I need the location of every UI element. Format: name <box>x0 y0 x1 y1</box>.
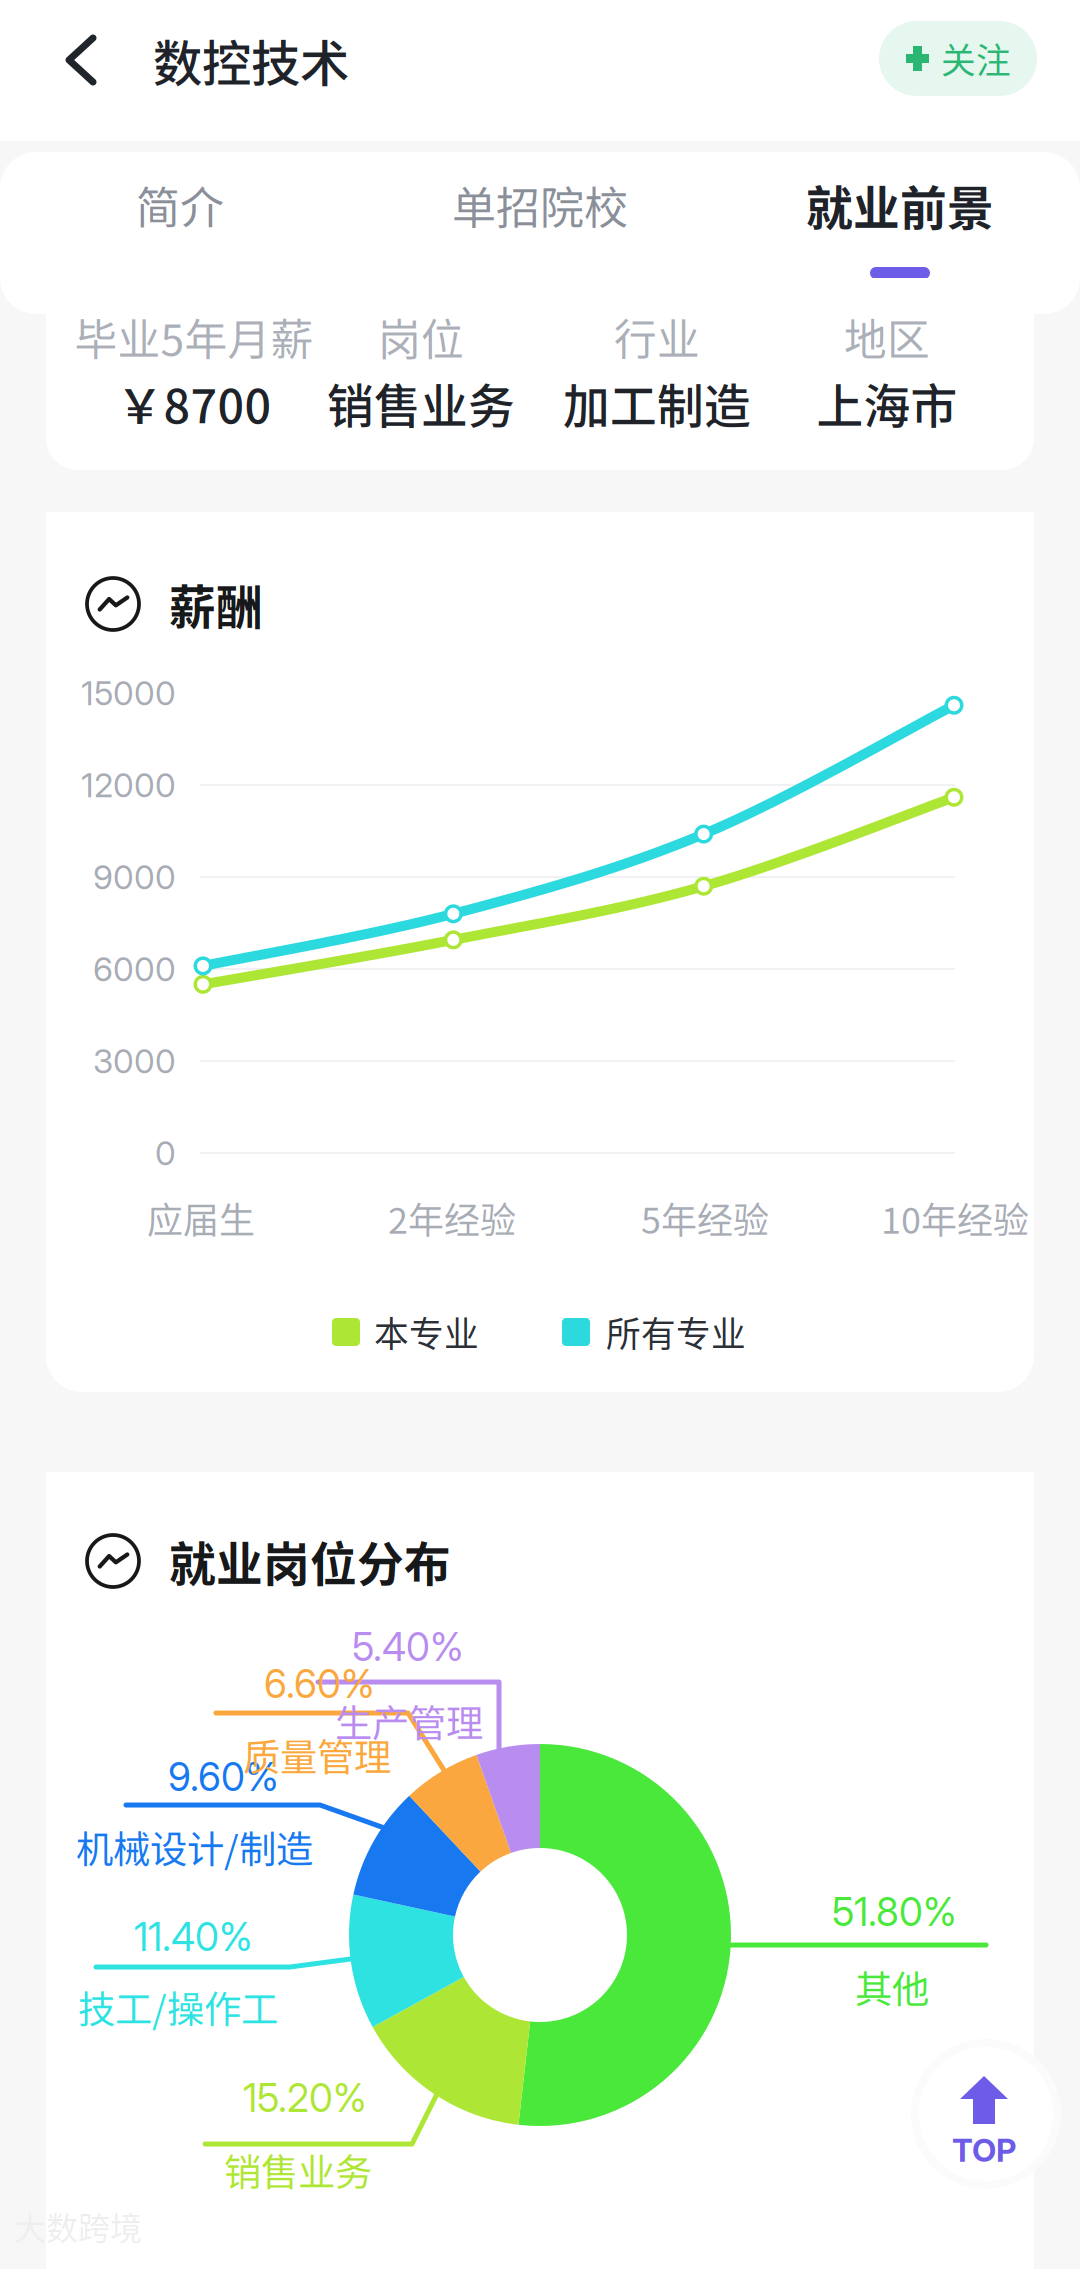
staticText: 毕业5年月薪 <box>74 306 313 368</box>
button[interactable]: 返回 <box>0 0 140 120</box>
staticText: 51.80% <box>832 1889 957 1935</box>
staticText: ￥8700 <box>116 369 271 437</box>
button[interactable]: 关注 <box>879 21 1037 96</box>
staticText: 质量管理 <box>243 1728 391 1782</box>
staticText: 上海市 <box>816 369 957 437</box>
button[interactable]: 就业前景 <box>720 160 1080 300</box>
staticText: 其他 <box>855 1960 929 2014</box>
staticText: 3000 <box>93 1041 176 1081</box>
staticText: 6.60% <box>264 1661 375 1707</box>
staticText: 所有专业 <box>606 1307 746 1357</box>
staticText: 单招院校 <box>452 173 628 237</box>
staticText: 岗位 <box>378 306 464 368</box>
staticText: 机械设计/制造 <box>76 1820 313 1874</box>
staticText: 9000 <box>93 857 176 897</box>
staticText: 技工/操作工 <box>78 1980 278 2034</box>
staticText: 关注 <box>941 33 1011 84</box>
staticText: 大数跨境 <box>14 2203 142 2249</box>
staticText: 生产管理 <box>335 1694 483 1748</box>
staticText: 15000 <box>81 673 176 713</box>
staticText: 简介 <box>136 173 224 237</box>
staticText: 数控技术 <box>153 24 349 96</box>
staticText: 12000 <box>81 765 176 805</box>
button[interactable]: 单招院校 <box>360 160 720 300</box>
staticText: 行业 <box>614 306 700 368</box>
staticText: 0 <box>155 1133 176 1173</box>
staticText: 应届生 <box>147 1192 255 1244</box>
staticText: 地区 <box>844 306 930 368</box>
staticText: 2年经验 <box>388 1192 516 1244</box>
staticText: 6000 <box>93 949 176 989</box>
staticText: 就业岗位分布 <box>169 1527 451 1595</box>
staticText: 加工制造 <box>563 369 751 437</box>
staticText: 薪酬 <box>169 570 263 638</box>
staticText: 本专业 <box>374 1307 479 1357</box>
staticText: 5年经验 <box>641 1192 769 1244</box>
staticText: 就业前景 <box>806 171 994 239</box>
staticText: 9.60% <box>168 1754 279 1800</box>
staticText: 5.40% <box>352 1624 464 1670</box>
staticText: TOP <box>952 2131 1016 2169</box>
staticText: 11.40% <box>134 1914 253 1960</box>
staticText: 15.20% <box>243 2075 367 2121</box>
button[interactable]: 简介 <box>0 160 360 300</box>
staticText: 10年经验 <box>881 1192 1029 1244</box>
button[interactable]: 回到顶部 <box>927 2055 1061 2189</box>
staticText: 销售业务 <box>327 369 515 437</box>
staticText: 销售业务 <box>224 2143 372 2197</box>
